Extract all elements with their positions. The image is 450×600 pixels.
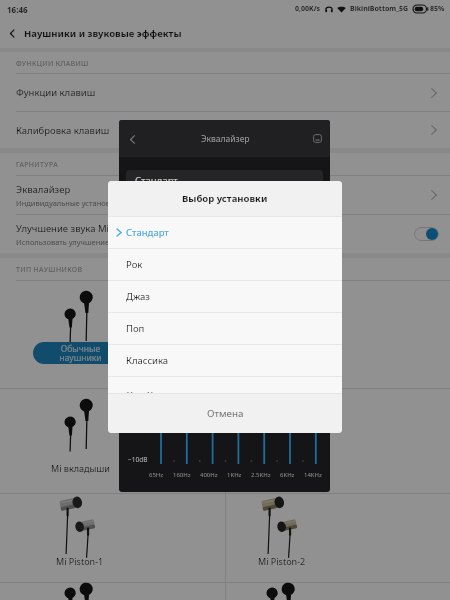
staticText: ФУНКЦИИ КЛАВИШ [16, 59, 89, 69]
staticText: Джаз [126, 290, 150, 303]
staticText: Mi Piston-2 [258, 555, 306, 567]
button[interactable]: Функции клавиш [0, 74, 450, 111]
button[interactable]: Toggle Mi sound enhancement [414, 227, 439, 241]
staticText: Функции клавиш [16, 86, 96, 99]
staticText: ГАРНИТУРА [16, 160, 58, 170]
button[interactable]: Эквалайзер [0, 176, 450, 214]
button[interactable]: Улучшение звука Mi [0, 215, 450, 253]
staticText: Mi Piston-1 [56, 555, 104, 567]
staticText: Улучшение звука Mi [16, 222, 109, 235]
button[interactable]: Save preset [313, 134, 322, 143]
staticText: Выбор установки [182, 192, 268, 205]
staticText: Использовать улучшение звука [16, 237, 131, 247]
staticText: Стандарт [126, 226, 169, 239]
staticText: 14KHz [304, 471, 322, 479]
staticText: 65Hz [149, 471, 164, 479]
staticText: Рок [126, 258, 143, 271]
staticText: −10dB [128, 455, 148, 464]
staticText: Поп [126, 322, 145, 335]
staticText: Наушники и звуковые эффекты [24, 27, 182, 40]
staticText: 6KHz [280, 471, 295, 479]
button[interactable]: Классика [108, 345, 342, 376]
staticText: Калибровка клавиш [16, 124, 110, 137]
staticText: BikiniBottom_5G [350, 4, 409, 14]
button[interactable]: Калибровка клавиш [0, 112, 450, 148]
button[interactable] [0, 494, 225, 582]
staticText: Эквалайзер [16, 183, 71, 196]
staticText: 2.5KHz [251, 471, 271, 479]
staticText: Хип-Хоп [127, 389, 165, 393]
staticText: Обычные наушники [59, 343, 102, 364]
staticText: 160Hz [173, 471, 191, 479]
staticText: 0,00K/s [295, 4, 321, 14]
button[interactable]: Отмена [108, 394, 342, 433]
staticText: Отмена [207, 407, 244, 420]
button[interactable] [0, 281, 225, 388]
button[interactable] [226, 389, 450, 493]
button[interactable]: Хип-Хоп [108, 377, 342, 393]
staticText: 400Hz [200, 471, 218, 479]
button[interactable]: Рок [108, 249, 342, 280]
button[interactable] [226, 583, 450, 600]
staticText: Индивидуальные установки [16, 198, 119, 208]
button[interactable] [226, 494, 450, 582]
button[interactable]: Джаз [108, 281, 342, 312]
staticText: 16:46 [7, 4, 28, 15]
staticText: ТИП НАУШНИКОВ [16, 265, 83, 275]
staticText: 85% [430, 4, 445, 14]
button[interactable]: Back [0, 18, 24, 48]
button[interactable]: Стандарт [108, 217, 342, 248]
button[interactable]: Back [125, 132, 139, 146]
button[interactable] [0, 583, 225, 600]
button[interactable]: Поп [108, 313, 342, 344]
staticText: 1KHz [227, 471, 242, 479]
staticText: Mi вкладыши [51, 462, 110, 474]
staticText: Классика [126, 354, 169, 367]
staticText: Стандарт [135, 174, 178, 187]
button[interactable] [0, 389, 225, 493]
staticText: Эквалайзер [201, 133, 250, 145]
button[interactable] [226, 281, 450, 388]
